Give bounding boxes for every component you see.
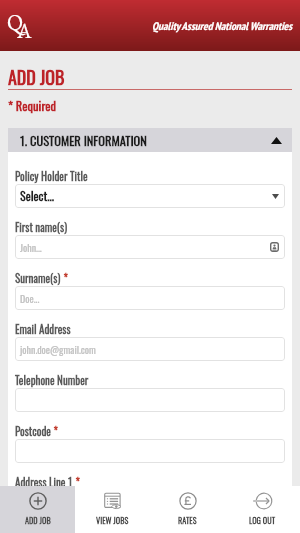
button[interactable]: View jobs bbox=[75, 486, 150, 533]
staticText: A bbox=[17, 17, 32, 44]
other: Log out bbox=[254, 492, 272, 510]
staticText: Email Address bbox=[15, 321, 71, 337]
staticText: * bbox=[73, 474, 80, 486]
staticText: Select... bbox=[20, 187, 54, 205]
staticText: First name(s) bbox=[15, 219, 68, 235]
button[interactable] bbox=[15, 439, 285, 463]
other: QA logo bbox=[6, 9, 48, 43]
staticText: Address Line 1 bbox=[15, 474, 73, 486]
button[interactable]: Add job bbox=[0, 486, 75, 533]
staticText: ADD JOB bbox=[8, 64, 65, 91]
staticText: Doe... bbox=[20, 291, 40, 306]
button[interactable]: John... bbox=[15, 235, 285, 259]
staticText: VIEW JOBS bbox=[96, 514, 129, 526]
staticText: LOG OUT bbox=[249, 514, 276, 526]
staticText: * Required bbox=[8, 96, 57, 115]
button[interactable] bbox=[15, 388, 285, 412]
staticText: Telephone Number bbox=[15, 372, 89, 388]
staticText: Policy Holder Title bbox=[15, 168, 88, 184]
staticText: John... bbox=[20, 240, 42, 255]
staticText: Quality Assured National Warranties bbox=[152, 19, 293, 33]
other: View jobs bbox=[104, 492, 122, 510]
button[interactable]: Select... bbox=[15, 184, 285, 208]
button[interactable]: Log out bbox=[225, 486, 300, 533]
button[interactable]: Doe... bbox=[15, 286, 285, 310]
staticText: john.doe@gmail.com bbox=[20, 342, 96, 357]
staticText: Surname(s) bbox=[15, 270, 61, 286]
button[interactable]: Rates bbox=[150, 486, 225, 533]
staticText: * bbox=[61, 270, 68, 286]
button[interactable]: john.doe@gmail.com bbox=[15, 337, 285, 361]
staticText: RATES bbox=[178, 514, 197, 526]
other: Rates bbox=[179, 492, 197, 510]
staticText: Postcode bbox=[15, 423, 51, 439]
button[interactable]: 1. CUSTOMER INFORMATION bbox=[8, 128, 292, 152]
other: Add job bbox=[29, 492, 47, 510]
staticText: 1. CUSTOMER INFORMATION bbox=[20, 131, 147, 150]
other: Pick contact bbox=[270, 242, 279, 252]
staticText: * bbox=[51, 423, 58, 439]
staticText: Q bbox=[7, 8, 24, 35]
staticText: ADD JOB bbox=[25, 514, 51, 526]
